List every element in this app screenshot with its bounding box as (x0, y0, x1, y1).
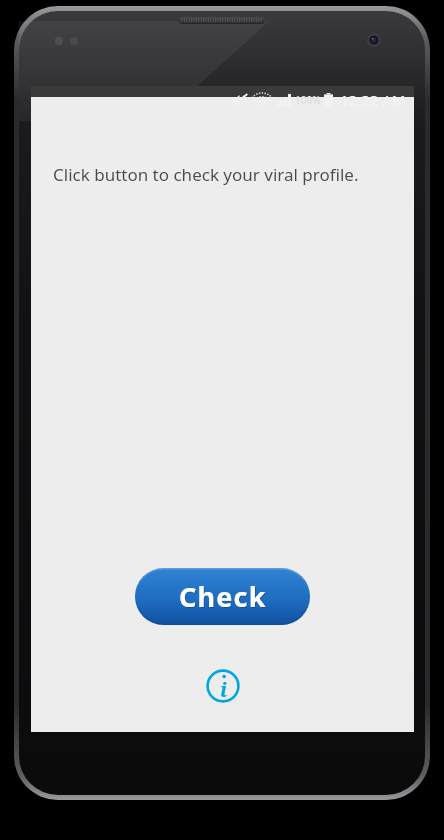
staticText: i (220, 676, 228, 703)
button[interactable]: Check (135, 568, 310, 625)
staticText: 12:22 AM (340, 90, 406, 110)
staticText: Check (180, 579, 268, 616)
staticText: Click button to check your viral profile… (53, 163, 392, 186)
staticText: 100% (295, 93, 321, 107)
button[interactable]: Information (202, 665, 244, 707)
staticText: Check (179, 578, 267, 615)
